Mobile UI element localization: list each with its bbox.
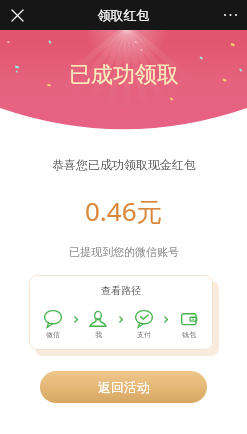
staticText: 微信 [46, 330, 60, 339]
button[interactable]: Close [0, 0, 34, 30]
staticText: 0.46元 [85, 193, 163, 229]
button[interactable]: 返回活动 [40, 371, 207, 403]
staticText: 钱包 [182, 330, 196, 339]
staticText: 支付 [137, 330, 151, 339]
button[interactable]: More options [213, 0, 247, 30]
staticText: 已提现到您的微信账号 [69, 245, 179, 259]
staticText: 领取红包 [34, 7, 213, 23]
staticText: 我 [95, 330, 102, 339]
staticText: 已成功领取 [69, 61, 179, 89]
staticText: 恭喜您已成功领取现金红包 [52, 157, 196, 172]
staticText: 返回活动 [98, 379, 150, 395]
staticText: 查看路径 [101, 284, 141, 297]
button[interactable]: 查看路径 [29, 275, 213, 350]
